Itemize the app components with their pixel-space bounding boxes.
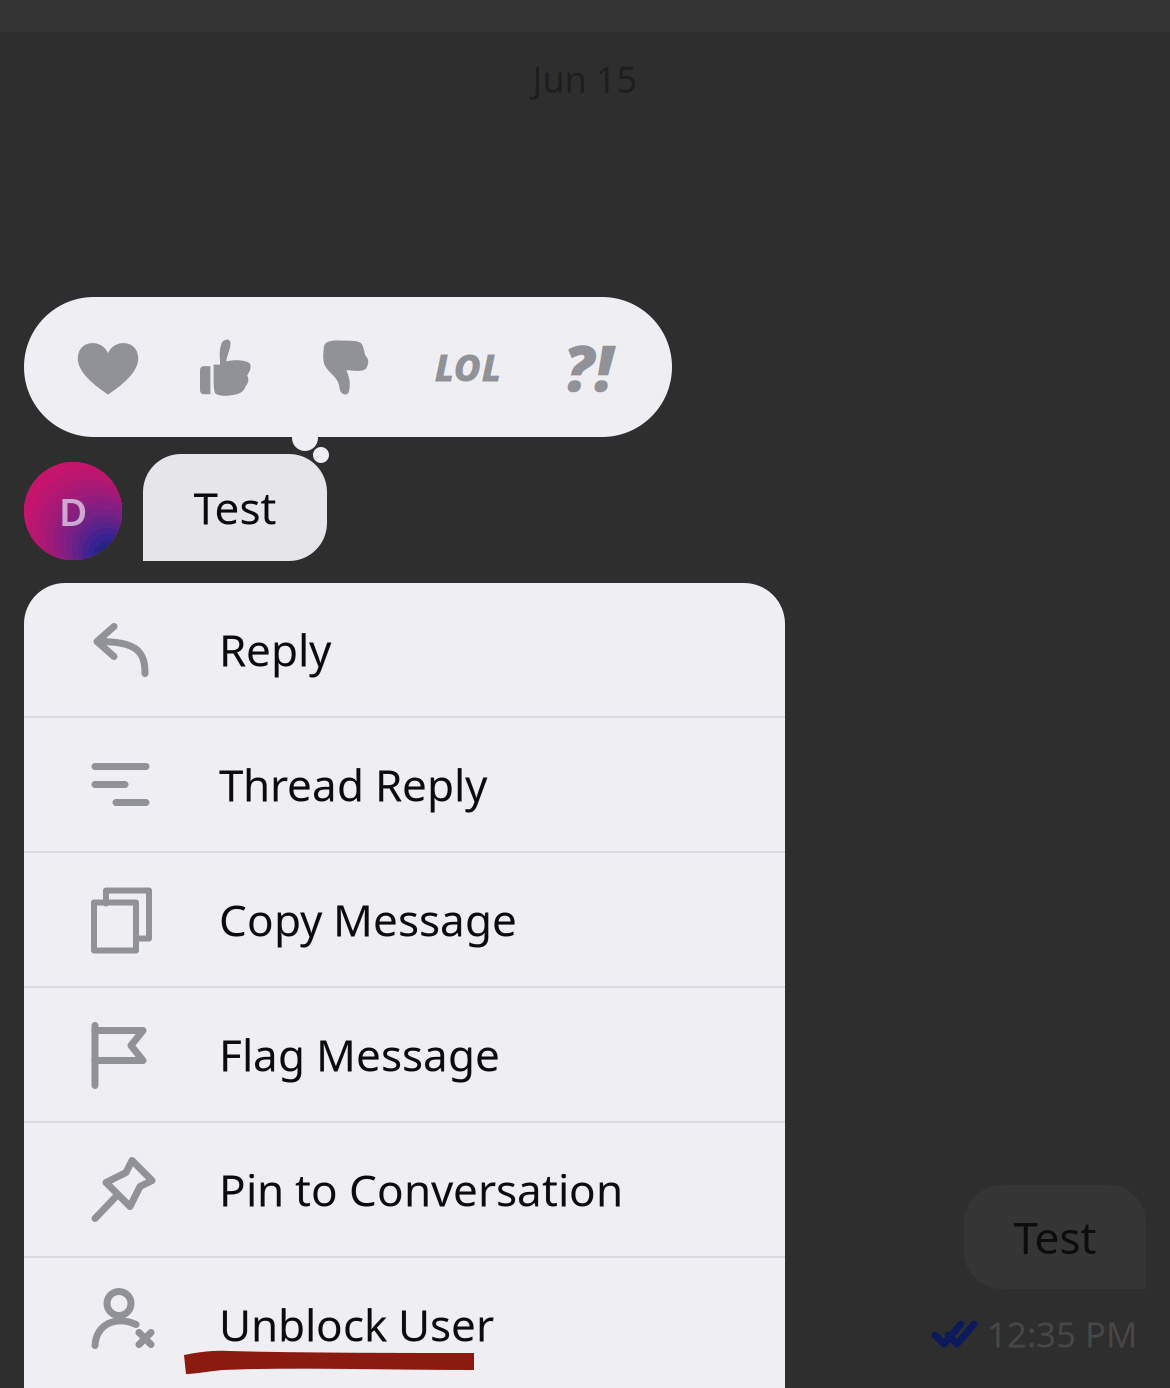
- button[interactable]: Pin to Conversation: [24, 1123, 785, 1256]
- button[interactable]: Thumbs up reaction: [168, 297, 288, 437]
- staticText: 12:35 PM: [987, 1311, 1137, 1357]
- staticText: Flag Message: [219, 1025, 500, 1084]
- staticText: Jun 15: [532, 55, 637, 103]
- staticText: Copy Message: [219, 890, 517, 949]
- staticText: ?!: [563, 324, 613, 409]
- button[interactable]: Unblock User: [24, 1258, 785, 1388]
- button[interactable]: Wow reaction: [528, 297, 648, 437]
- staticText: D: [59, 485, 87, 537]
- button[interactable]: Reply: [24, 583, 785, 716]
- button[interactable]: Thread Reply: [24, 718, 785, 851]
- staticText: Pin to Conversation: [219, 1160, 623, 1219]
- staticText: Reply: [219, 620, 331, 679]
- staticText: Thread Reply: [219, 755, 487, 814]
- staticText: Unblock User: [219, 1295, 494, 1354]
- button[interactable]: Flag Message: [24, 988, 785, 1121]
- button[interactable]: Copy Message: [24, 853, 785, 986]
- button[interactable]: LOL reaction: [408, 297, 528, 437]
- button[interactable]: Test: [143, 454, 327, 561]
- staticText: Test: [1013, 1208, 1096, 1266]
- button[interactable]: Love reaction: [48, 297, 168, 437]
- staticText: LOL: [434, 342, 501, 392]
- button[interactable]: Thumbs down reaction: [288, 297, 408, 437]
- staticText: Test: [193, 478, 276, 537]
